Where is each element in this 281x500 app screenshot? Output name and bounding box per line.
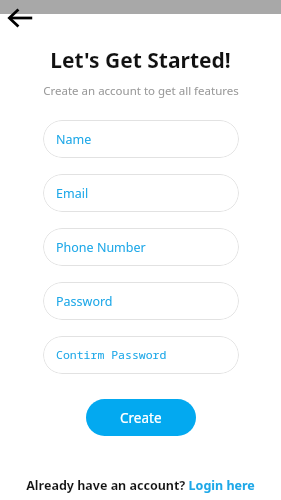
staticText: Let's Get Started! — [50, 46, 231, 75]
button[interactable]: Name — [43, 120, 239, 158]
staticText: Create — [120, 409, 162, 427]
staticText: Phone Number — [56, 239, 146, 256]
button[interactable]: Back — [5, 3, 35, 33]
button[interactable]: Create — [86, 399, 196, 436]
staticText: Email — [56, 185, 89, 202]
button[interactable]: Contirm Password — [43, 336, 239, 374]
staticText: Already have an account? Login here — [26, 477, 255, 494]
button[interactable]: Already have an account? Login here — [0, 477, 281, 494]
button[interactable]: Password — [43, 282, 239, 320]
staticText: Contirm Password — [56, 347, 167, 363]
staticText: Create an account to get all features — [43, 83, 239, 99]
staticText: Password — [56, 293, 113, 310]
button[interactable]: Email — [43, 174, 239, 212]
button[interactable]: Phone Number — [43, 228, 239, 266]
staticText: Name — [56, 131, 92, 148]
